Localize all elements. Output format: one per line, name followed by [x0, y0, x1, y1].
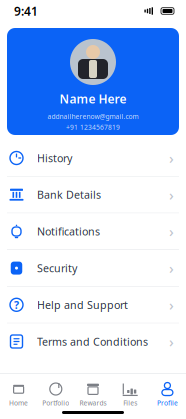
staticText: History — [37, 151, 72, 165]
staticText: ? — [14, 298, 19, 312]
button[interactable]: Notifications — [0, 213, 186, 249]
button[interactable]: History — [0, 140, 186, 176]
staticText: addnailherenow@gmail.com — [47, 112, 138, 121]
staticText: Name Here — [59, 91, 126, 107]
staticText: Notifications — [37, 224, 100, 238]
staticText: › — [169, 148, 174, 168]
button[interactable]: Files — [112, 379, 149, 411]
staticText: Terms and Conditions — [37, 334, 148, 349]
staticText: › — [169, 185, 174, 204]
button[interactable]: Security — [0, 250, 186, 286]
staticText: Home — [9, 398, 28, 407]
staticText: Profile — [157, 398, 178, 407]
staticText: Help and Support — [37, 298, 128, 312]
staticText: › — [169, 332, 174, 351]
button[interactable]: Profile — [149, 379, 186, 411]
staticText: Rewards — [79, 398, 106, 407]
staticText: Security — [37, 261, 77, 275]
staticText: 9:41 — [14, 3, 38, 19]
button[interactable]: ? — [0, 287, 186, 323]
staticText: Portfolio — [42, 398, 69, 407]
button[interactable]: Terms and Conditions — [0, 323, 186, 359]
staticText: › — [169, 258, 174, 278]
button[interactable]: Home — [0, 379, 37, 411]
staticText: +91 1234567819 — [66, 123, 120, 132]
staticText: Bank Details — [37, 188, 101, 202]
button[interactable]: Bank Details — [0, 177, 186, 213]
staticText: › — [169, 295, 174, 315]
staticText: Files — [123, 398, 137, 407]
button[interactable]: Rewards — [74, 379, 112, 411]
staticText: › — [169, 222, 174, 241]
button[interactable]: Portfolio — [37, 379, 74, 411]
